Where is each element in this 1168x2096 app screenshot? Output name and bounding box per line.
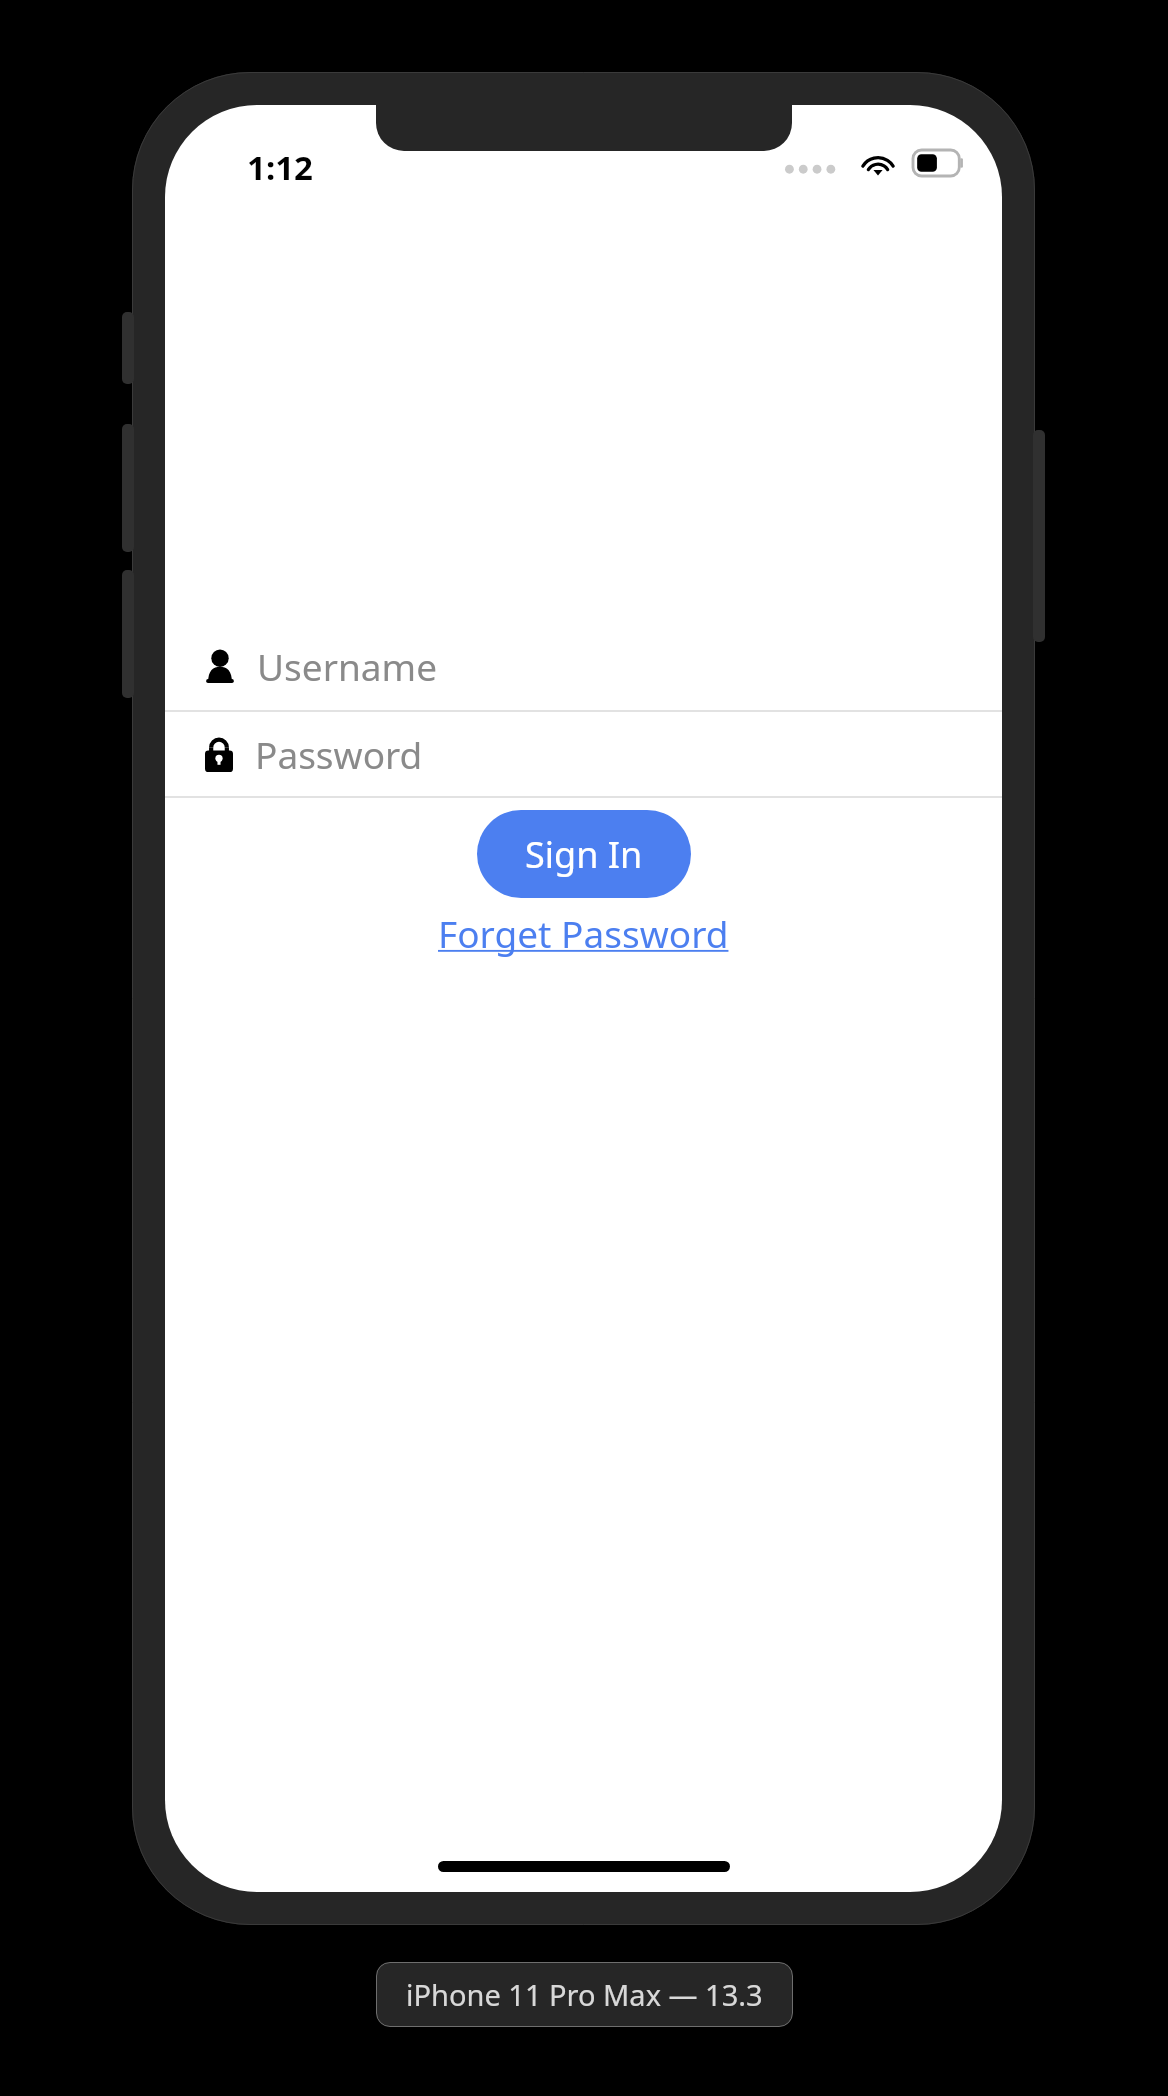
staticText: Forget Password bbox=[438, 908, 729, 958]
staticText: Password bbox=[255, 729, 423, 779]
button[interactable]: Username bbox=[165, 621, 1002, 710]
button[interactable]: Password bbox=[165, 712, 1002, 796]
staticText: Username bbox=[257, 641, 438, 691]
other: Username bbox=[205, 649, 235, 683]
staticText: Sign In bbox=[525, 830, 643, 879]
button[interactable]: iPhone 11 Pro Max — 13.3 bbox=[376, 1962, 793, 2027]
button[interactable]: Forget Password bbox=[430, 904, 737, 962]
staticText: iPhone 11 Pro Max — 13.3 bbox=[406, 1975, 763, 2014]
other: Password bbox=[205, 736, 233, 772]
button[interactable]: Sign In bbox=[477, 810, 691, 898]
staticText: 1:12 bbox=[247, 145, 313, 190]
